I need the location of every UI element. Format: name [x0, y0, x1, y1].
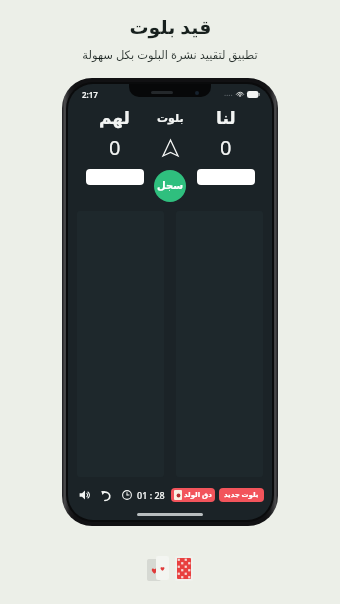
- button[interactable]: [86, 169, 144, 185]
- button[interactable]: بلوت جديد: [219, 488, 264, 502]
- staticText: دق الولد: [184, 490, 212, 500]
- staticText: تطبيق لتقييد نشرة البلوت بكل سهولة: [82, 47, 258, 63]
- staticText: بلوت: [157, 112, 184, 125]
- staticText: قيد بلوت: [129, 14, 212, 40]
- staticText: لهم: [99, 108, 130, 128]
- staticText: بلوت جديد: [224, 490, 259, 500]
- staticText: لنا: [216, 108, 236, 128]
- button[interactable]: Timer: [119, 487, 135, 503]
- button[interactable]: سجل: [154, 170, 186, 202]
- staticText: سجل: [157, 180, 183, 192]
- staticText: 0: [109, 134, 121, 161]
- button[interactable]: دق الولد: [171, 488, 215, 502]
- staticText: 01 : 28: [137, 489, 165, 501]
- staticText: 2:17: [82, 89, 98, 100]
- staticText: 0: [220, 134, 232, 161]
- button[interactable]: Sound: [76, 486, 94, 504]
- button[interactable]: Undo: [97, 486, 115, 504]
- button[interactable]: [197, 169, 255, 185]
